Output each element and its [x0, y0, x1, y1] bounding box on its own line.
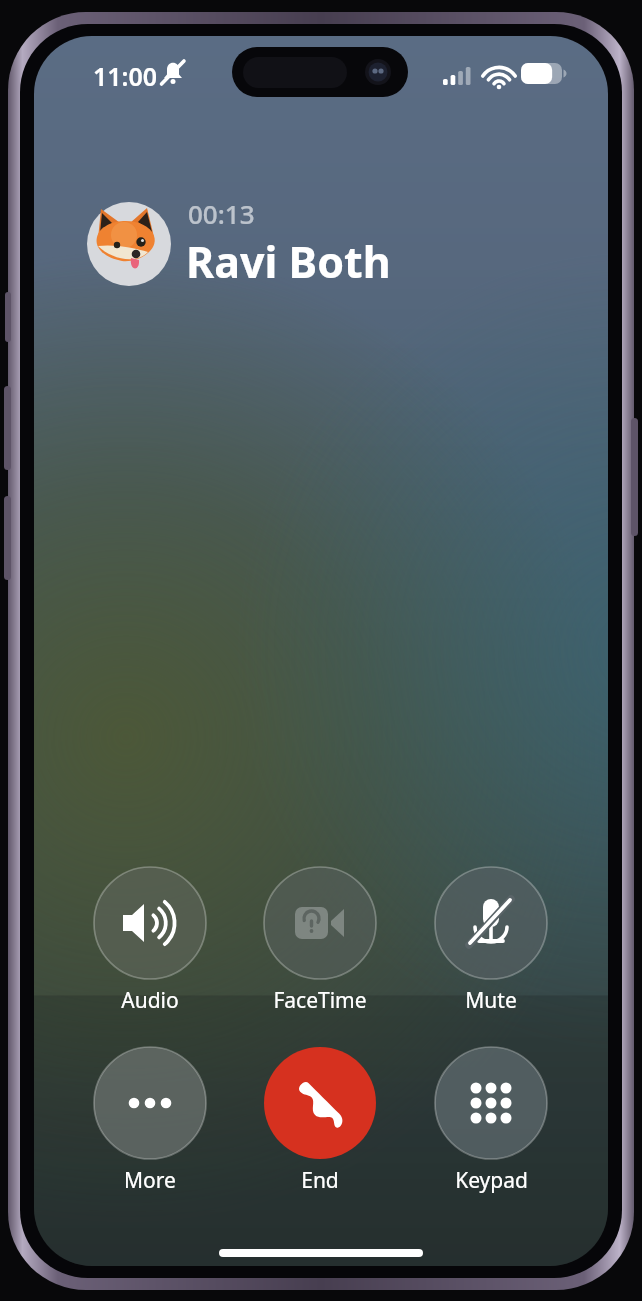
button[interactable]: FaceTime	[264, 867, 376, 979]
staticText: FaceTime	[273, 986, 367, 1015]
staticText: Audio	[121, 986, 179, 1015]
button[interactable]: Keypad	[435, 1047, 547, 1159]
button[interactable]: Mute	[435, 867, 547, 979]
staticText: Keypad	[455, 1166, 528, 1195]
button[interactable]: More	[94, 1047, 206, 1159]
staticText: 11:00	[93, 59, 158, 93]
staticText: Mute	[465, 986, 517, 1015]
button[interactable]: Audio	[94, 867, 206, 979]
staticText: End	[301, 1166, 339, 1195]
staticText: More	[124, 1166, 176, 1195]
button[interactable]: End	[264, 1047, 376, 1159]
staticText: 00:13	[188, 196, 255, 231]
staticText: Ravi Both	[186, 232, 391, 291]
